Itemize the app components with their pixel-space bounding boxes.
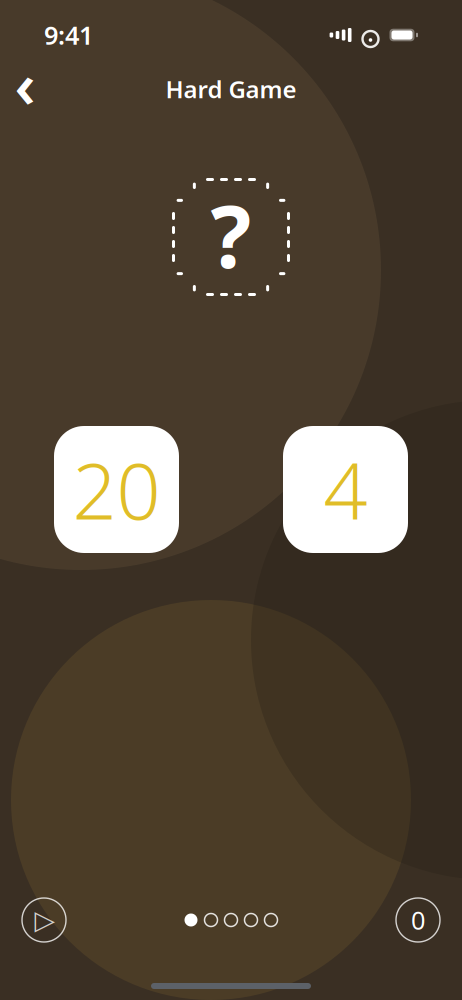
button[interactable]: 4 bbox=[283, 426, 408, 553]
staticText: ▷ bbox=[34, 905, 55, 935]
staticText: ‹ bbox=[14, 43, 35, 125]
staticText: 4 bbox=[323, 438, 367, 541]
staticText: 0 bbox=[411, 903, 425, 937]
staticText: Hard Game bbox=[165, 73, 296, 105]
staticText: 20 bbox=[72, 438, 160, 541]
staticText: ? bbox=[210, 178, 251, 292]
button[interactable]: 20 bbox=[54, 426, 179, 553]
button[interactable]: Play bbox=[22, 898, 66, 942]
staticText: 9:41 bbox=[44, 18, 93, 52]
button[interactable]: Back bbox=[2, 66, 48, 112]
button[interactable]: Score 0 bbox=[396, 898, 440, 942]
